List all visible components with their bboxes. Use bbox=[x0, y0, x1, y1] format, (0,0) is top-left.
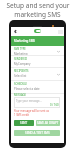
button[interactable]: SENDER ID bbox=[11, 56, 64, 68]
staticText: MESSAGE bbox=[14, 93, 26, 97]
staticText: SENDER ID bbox=[14, 57, 28, 61]
staticText: Type your message... bbox=[16, 99, 42, 103]
button[interactable]: Type your message... bbox=[14, 97, 60, 108]
button[interactable]: Marketing SMS bbox=[11, 36, 64, 46]
staticText: Marketing SMS bbox=[14, 39, 35, 43]
staticText: SAVE AS DRAFT bbox=[37, 121, 59, 125]
staticText: SCHEDULE bbox=[14, 82, 28, 86]
button[interactable]: SMS TYPE bbox=[11, 46, 64, 56]
other: Back bbox=[14, 30, 17, 33]
staticText: MyCompany bbox=[14, 62, 31, 66]
staticText: Please select a date bbox=[14, 87, 40, 91]
staticText: Select list bbox=[14, 74, 27, 78]
button[interactable]: SENT bbox=[14, 120, 34, 126]
staticText: SMS TYPE bbox=[14, 47, 26, 51]
staticText: marketing SMS bbox=[14, 10, 61, 19]
staticText: Your message will be sent as bbox=[14, 109, 49, 113]
button[interactable]: SEND A TEST SMS bbox=[14, 130, 60, 136]
staticText: SENT bbox=[20, 121, 28, 125]
staticText: Marketing bbox=[14, 52, 28, 56]
staticText: 0 / 160 bbox=[50, 103, 59, 107]
staticText: SEND A TEST SMS bbox=[25, 131, 50, 135]
button[interactable]: SCHEDULE bbox=[11, 81, 64, 94]
staticText: 1 SMS credit bbox=[14, 113, 29, 117]
staticText: RECIPIENTS bbox=[14, 69, 29, 73]
button[interactable]: SAVE AS DRAFT bbox=[36, 120, 60, 126]
button[interactable]: RECIPIENTS bbox=[11, 68, 64, 81]
button[interactable]: Logo bbox=[34, 29, 41, 33]
staticText: Setup and send your bbox=[6, 1, 70, 10]
